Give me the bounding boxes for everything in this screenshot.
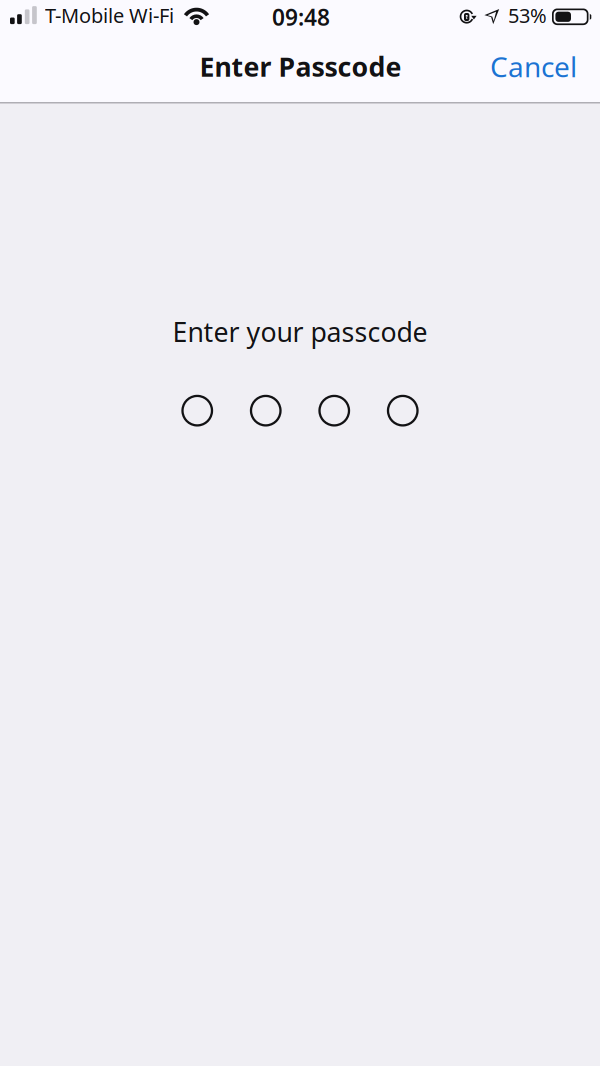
staticText: Enter your passcode [172,314,427,349]
staticText: Cancel [490,48,577,85]
button[interactable]: Cancel [477,34,590,99]
button[interactable]: Passcode, 4 digits, empty [182,396,418,425]
staticText: T-Mobile Wi-Fi [45,2,174,29]
staticText: Enter Passcode [199,49,401,84]
staticText: 09:48 [272,2,330,32]
staticText: 53% [508,2,547,29]
